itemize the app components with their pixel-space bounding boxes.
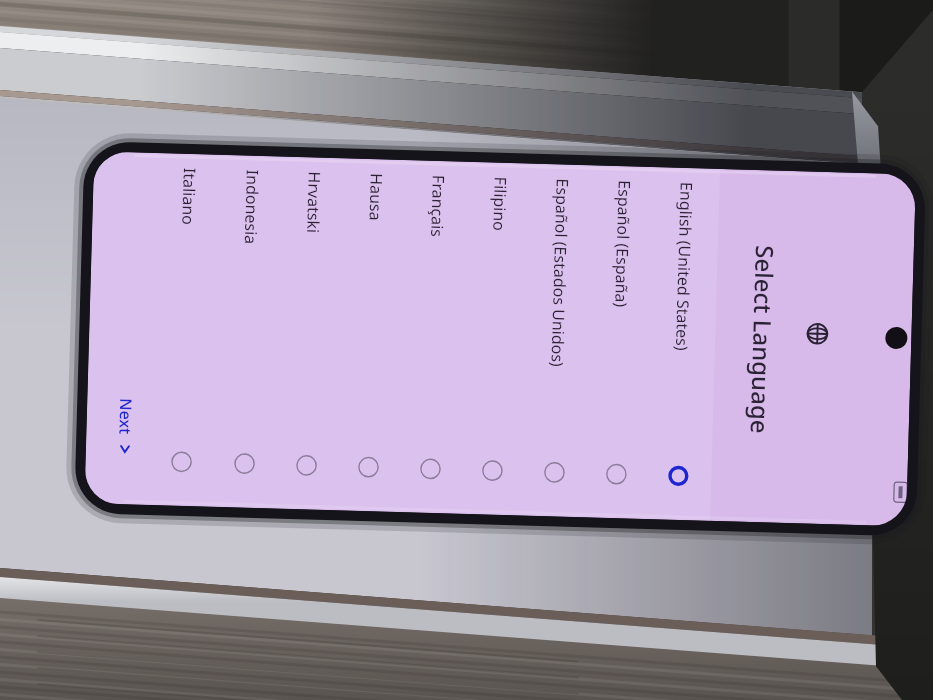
button[interactable]: Indonesia — [212, 155, 284, 508]
button[interactable]: Select Language — [744, 245, 782, 435]
staticText: Español (España) — [610, 180, 636, 309]
staticText: Filipino — [488, 176, 512, 232]
staticText: Hausa — [364, 173, 388, 221]
staticText: Select Language — [744, 245, 782, 435]
button[interactable]: Language — [806, 322, 829, 345]
button[interactable]: Next — [114, 398, 137, 457]
staticText: English (United States) — [671, 182, 698, 351]
button[interactable]: Français — [398, 160, 470, 514]
staticText: Italiano — [177, 168, 201, 225]
button[interactable]: Italiano — [149, 153, 221, 507]
staticText: Next — [114, 398, 137, 436]
staticText: Español (Estados Unidos) — [546, 178, 574, 368]
staticText: Français — [426, 175, 450, 237]
button[interactable]: Español (España) — [584, 165, 656, 519]
button[interactable]: Hausa — [336, 158, 408, 512]
button[interactable]: Español (Estados Unidos) — [522, 164, 594, 517]
button[interactable]: English (United States) — [646, 167, 718, 521]
button[interactable]: Hrvatski — [274, 157, 346, 510]
staticText: Hrvatski — [302, 171, 326, 234]
button[interactable]: Filipino — [460, 162, 532, 515]
staticText: Indonesia — [240, 169, 264, 245]
